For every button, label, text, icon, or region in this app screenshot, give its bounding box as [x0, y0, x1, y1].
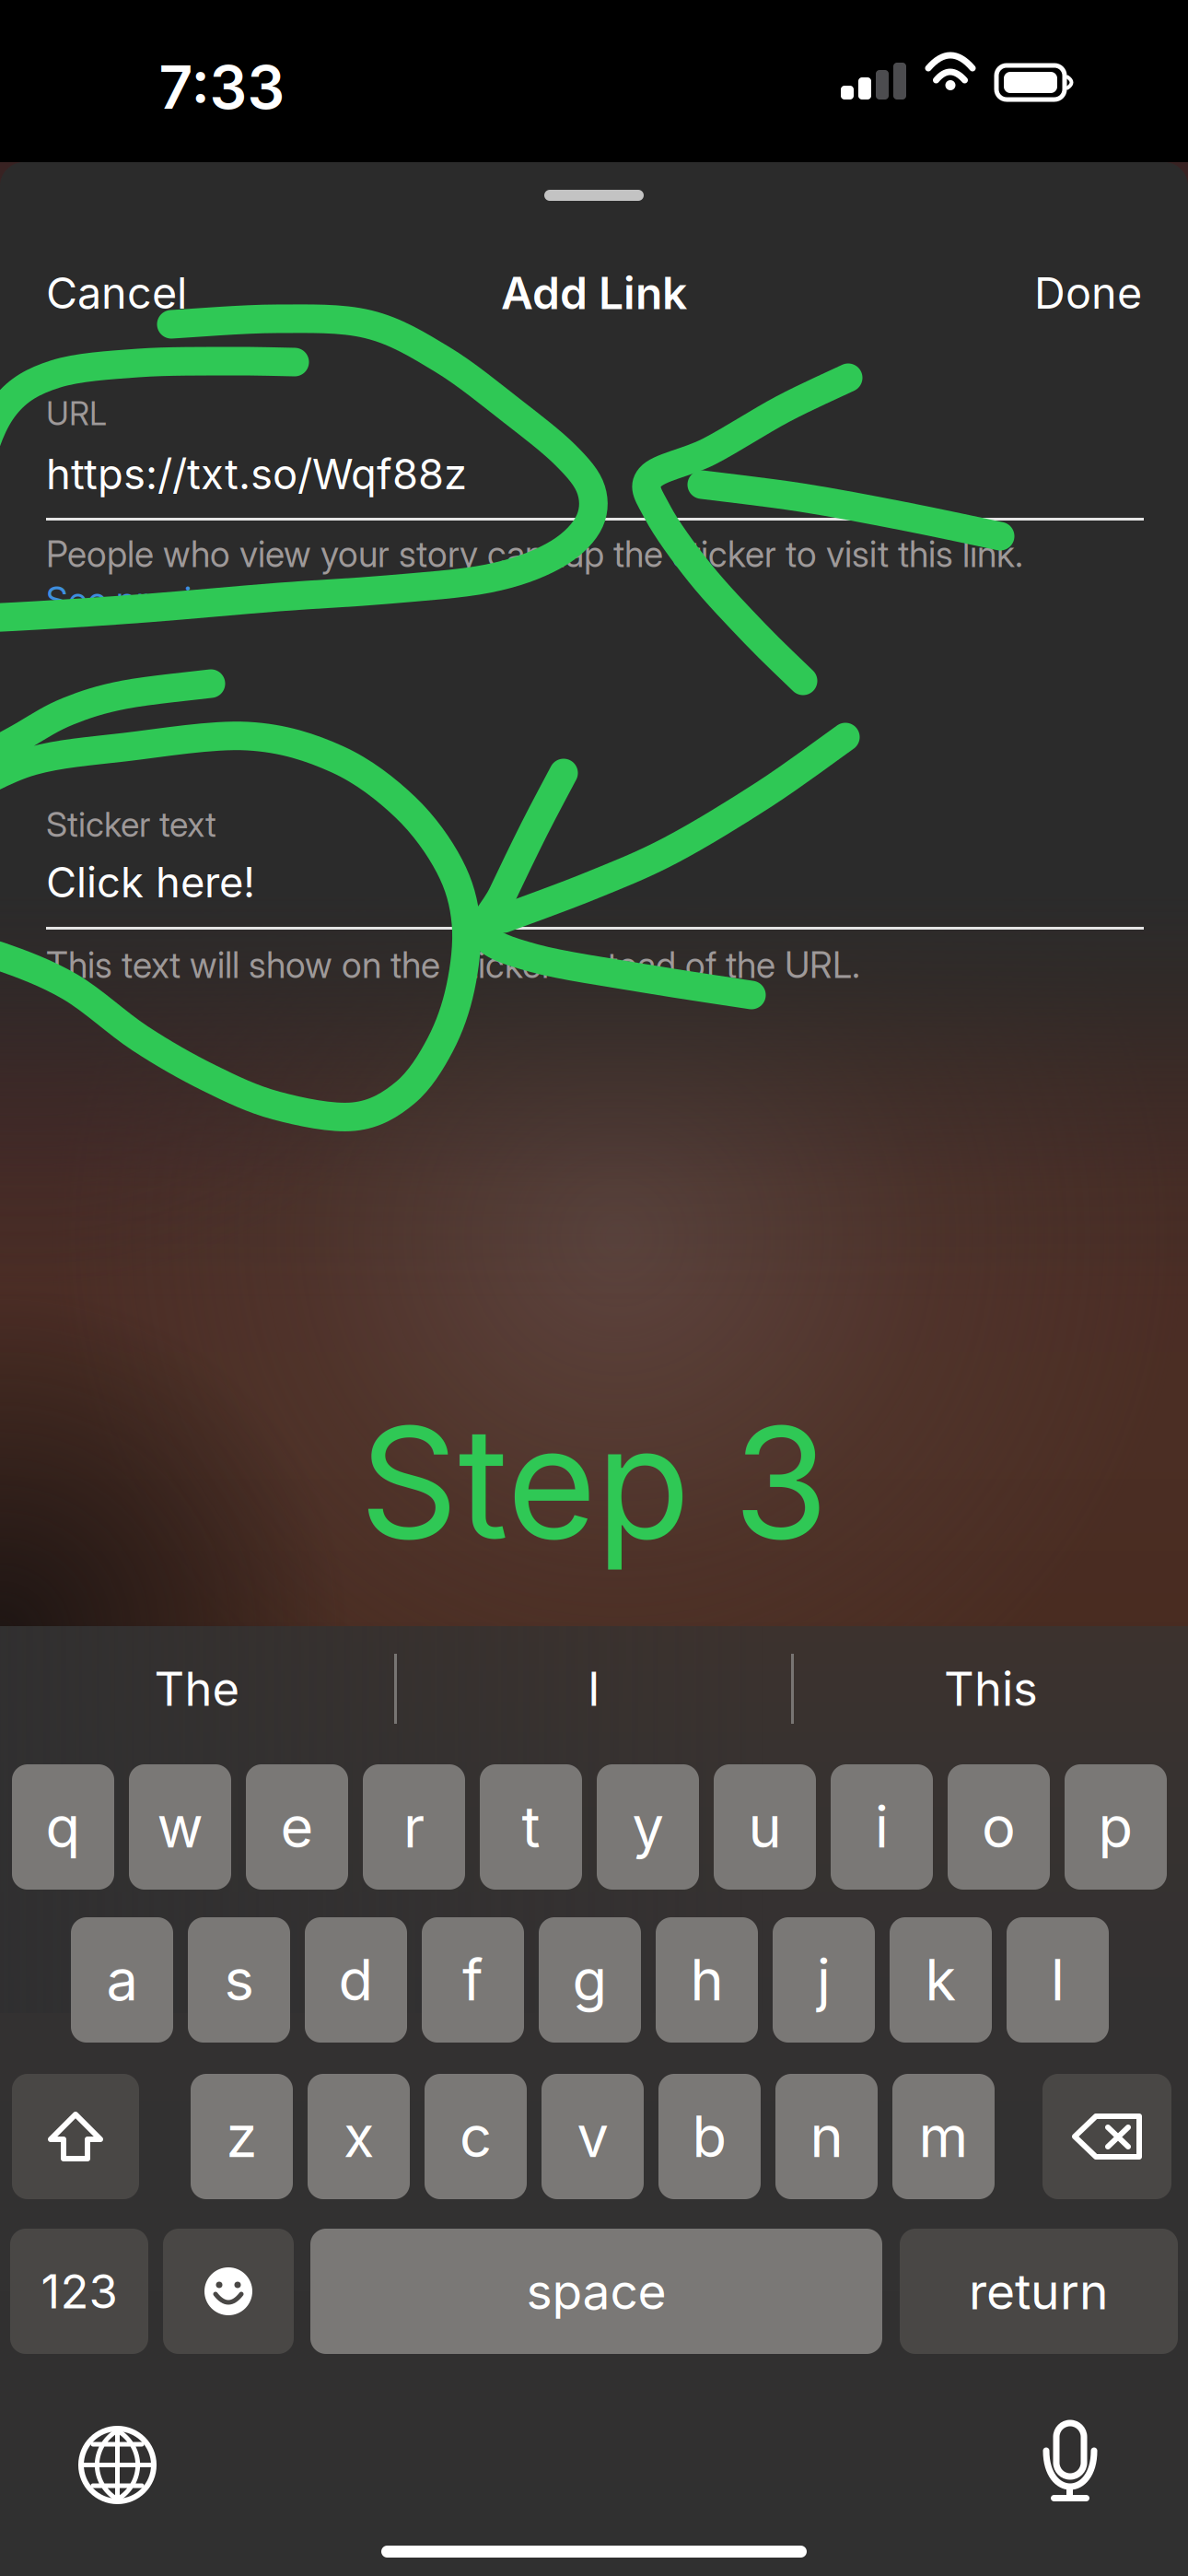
button[interactable]: t — [480, 1764, 582, 1890]
staticText: m — [919, 2102, 968, 2171]
staticText: 123 — [41, 2263, 117, 2320]
button[interactable]: The — [0, 1626, 394, 1751]
staticText: Cancel — [46, 267, 187, 319]
button[interactable]: z — [191, 2074, 293, 2199]
button[interactable]: Emoji — [163, 2229, 294, 2354]
staticText: l — [1051, 1946, 1065, 2014]
staticText: return — [969, 2262, 1109, 2321]
staticText: Sticker text — [46, 803, 216, 845]
staticText: o — [982, 1793, 1016, 1861]
staticText: Click here! — [46, 857, 255, 907]
staticText: I — [588, 1660, 600, 1717]
button[interactable]: c — [425, 2074, 527, 2199]
staticText: h — [690, 1946, 723, 2014]
button[interactable]: space — [310, 2229, 882, 2354]
staticText: f — [462, 1946, 483, 2014]
staticText: w — [157, 1793, 203, 1861]
staticText: The — [154, 1660, 240, 1717]
button[interactable]: u — [714, 1764, 816, 1890]
button[interactable]: a — [71, 1917, 173, 2043]
button[interactable]: s — [188, 1917, 290, 2043]
staticText: a — [106, 1946, 138, 2014]
staticText: This — [944, 1660, 1038, 1717]
button[interactable]: Done — [958, 259, 1142, 327]
staticText: k — [925, 1946, 956, 2014]
button[interactable]: l — [1007, 1917, 1109, 2043]
button[interactable]: w — [129, 1764, 231, 1890]
staticText: j — [817, 1946, 831, 2014]
staticText: https://txt.so/Wqf88z — [46, 449, 467, 499]
staticText: u — [748, 1793, 781, 1861]
button[interactable]: 123 — [10, 2229, 148, 2354]
staticText: x — [344, 2102, 374, 2171]
button[interactable]: Shift — [12, 2074, 139, 2199]
staticText: Step 3 — [360, 1389, 828, 1575]
staticText: See preview — [46, 579, 238, 622]
button[interactable]: Cancel — [46, 259, 249, 327]
button[interactable]: b — [658, 2074, 761, 2199]
button[interactable]: x — [308, 2074, 410, 2199]
staticText: c — [460, 2102, 492, 2171]
staticText: b — [692, 2102, 727, 2171]
button[interactable]: d — [305, 1917, 407, 2043]
button[interactable]: p — [1065, 1764, 1167, 1890]
button[interactable]: Delete — [1042, 2074, 1171, 2199]
staticText: q — [46, 1793, 81, 1861]
staticText: This text will show on the sticker inste… — [46, 943, 860, 987]
button[interactable]: I — [397, 1626, 791, 1751]
button[interactable]: g — [539, 1917, 641, 2043]
staticText: p — [1098, 1793, 1133, 1861]
button[interactable]: e — [246, 1764, 348, 1890]
button[interactable]: f — [422, 1917, 524, 2043]
button[interactable]: m — [892, 2074, 995, 2199]
button[interactable]: o — [948, 1764, 1050, 1890]
button[interactable]: q — [12, 1764, 114, 1890]
staticText: d — [338, 1946, 373, 2014]
staticText: n — [810, 2102, 843, 2171]
button[interactable]: v — [542, 2074, 644, 2199]
staticText: r — [403, 1793, 425, 1861]
button[interactable]: r — [363, 1764, 465, 1890]
button[interactable]: This — [794, 1626, 1188, 1751]
staticText: i — [875, 1793, 889, 1861]
button[interactable]: h — [656, 1917, 758, 2043]
staticText: 7:33 — [159, 52, 285, 123]
staticText: space — [526, 2262, 666, 2321]
staticText: URL — [46, 394, 107, 433]
button[interactable]: k — [890, 1917, 992, 2043]
staticText: e — [280, 1793, 314, 1861]
staticText: Add Link — [501, 266, 687, 320]
staticText: v — [577, 2102, 608, 2171]
button[interactable]: Dictation — [1043, 2423, 1097, 2502]
staticText: People who view your story can tap the s… — [46, 533, 1023, 576]
staticText: t — [522, 1793, 540, 1861]
button[interactable]: j — [773, 1917, 875, 2043]
button[interactable]: Next keyboard — [81, 2429, 154, 2501]
button[interactable]: return — [900, 2229, 1178, 2354]
staticText: g — [572, 1946, 607, 2014]
button[interactable]: i — [831, 1764, 933, 1890]
staticText: z — [226, 2102, 257, 2171]
staticText: Done — [1034, 267, 1142, 319]
button[interactable]: See preview — [46, 579, 414, 622]
button[interactable]: y — [597, 1764, 699, 1890]
staticText: s — [224, 1946, 254, 2014]
staticText: y — [632, 1793, 664, 1861]
button[interactable]: n — [775, 2074, 878, 2199]
